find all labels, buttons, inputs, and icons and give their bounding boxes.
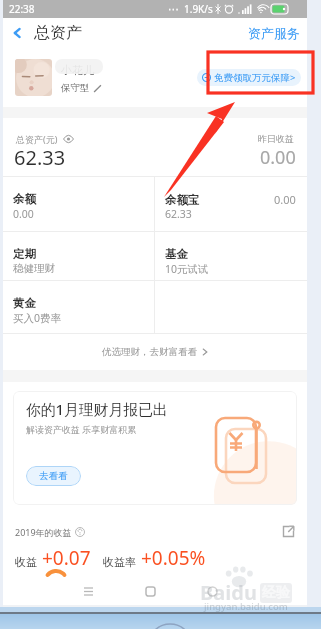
staticText: 稳健理财 xyxy=(13,262,55,275)
staticText: jingyan.baidu.com xyxy=(204,600,288,613)
button[interactable]: 你的1月理财月报已出 xyxy=(13,391,297,505)
button[interactable]: 基金 xyxy=(155,232,307,280)
button[interactable]: Home xyxy=(139,580,161,602)
button[interactable]: 余额 xyxy=(3,177,154,231)
staticText: 0.00 xyxy=(274,192,296,207)
button[interactable]: 免费领取万元保障> xyxy=(197,69,301,86)
staticText: +0.07 xyxy=(42,545,91,571)
staticText: 余额宝 xyxy=(165,193,200,207)
staticText: 收益 xyxy=(15,555,37,569)
button[interactable]: Open detail xyxy=(282,525,295,538)
button[interactable]: 去看看 xyxy=(26,466,81,486)
staticText: +0.05% xyxy=(141,545,206,571)
button[interactable]: 优选理财，去财富看看 xyxy=(3,334,307,370)
button[interactable]: Back xyxy=(3,19,31,47)
button[interactable]: 余额宝 xyxy=(155,177,307,231)
staticText: 小花儿 xyxy=(61,63,94,77)
staticText: 10元试试 xyxy=(165,262,209,276)
staticText: 62.33 xyxy=(14,144,66,171)
staticText: 定期 xyxy=(13,247,36,261)
staticText: 黄金 xyxy=(13,296,36,310)
staticText: 你的1月理财月报已出 xyxy=(26,399,168,419)
staticText: 免费领取万元保障> xyxy=(214,71,296,84)
staticText: 1.9K/s xyxy=(184,2,213,16)
staticText: 2019年的收益 xyxy=(15,526,72,538)
staticText: 22:38 xyxy=(9,2,35,16)
staticText: 资产服务 xyxy=(248,25,300,41)
staticText: 买入0费率 xyxy=(13,311,62,325)
staticText: Baidu xyxy=(200,579,257,606)
button[interactable]: 小花儿 xyxy=(3,48,307,107)
staticText: ⋯ xyxy=(168,3,179,16)
staticText: 昨日收益 xyxy=(258,133,294,144)
staticText: 收益率 xyxy=(103,555,136,569)
button[interactable]: Menu xyxy=(77,580,99,602)
button[interactable]: Recents xyxy=(201,580,223,602)
staticText: 解读资产收益 乐享财富积累 xyxy=(26,423,137,435)
button[interactable]: 黄金 xyxy=(3,281,154,333)
staticText: 经验 xyxy=(262,584,290,602)
button[interactable]: 资产服务 xyxy=(241,19,307,47)
staticText: 余额 xyxy=(13,192,36,206)
button[interactable]: 定期 xyxy=(3,232,154,280)
staticText: 0.00 xyxy=(260,145,296,170)
staticText: 总资产(元) xyxy=(16,133,58,145)
staticText: 总资产 xyxy=(34,23,82,43)
staticText: 去看看 xyxy=(39,470,68,482)
staticText: 优选理财，去财富看看 xyxy=(102,346,197,358)
staticText: 0.00 xyxy=(13,207,34,221)
staticText: 保守型 xyxy=(61,82,90,94)
staticText: 基金 xyxy=(165,247,188,261)
staticText: 62.33 xyxy=(165,207,192,221)
